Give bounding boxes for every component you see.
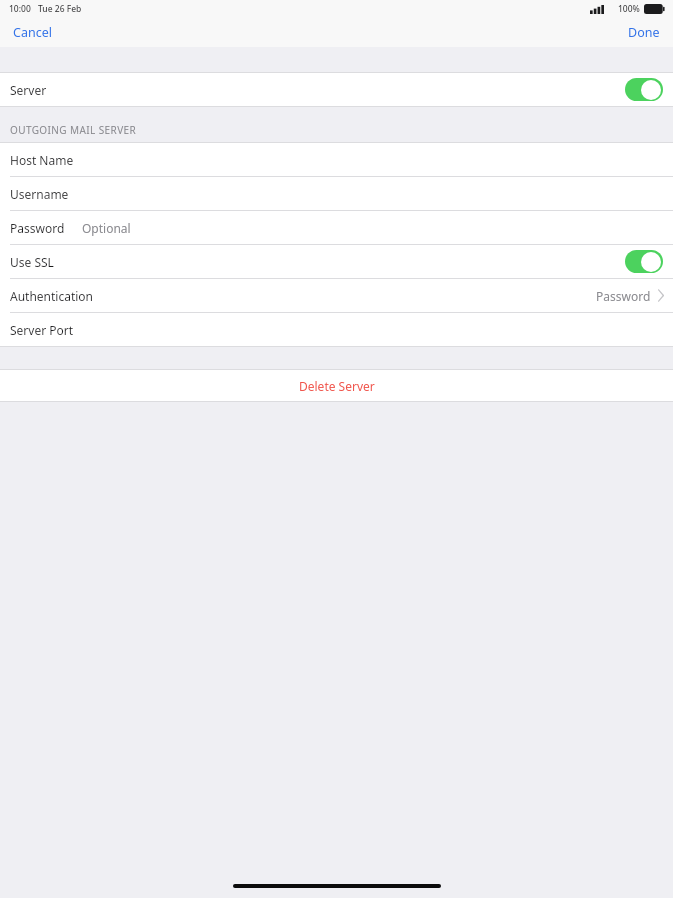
- staticText: Optional: [82, 220, 131, 236]
- staticText: 10:00: [9, 3, 31, 15]
- button[interactable]: Toggle: [625, 78, 663, 101]
- button[interactable]: Use SSL: [0, 245, 673, 278]
- staticText: OUTGOING MAIL SERVER: [10, 123, 137, 137]
- button[interactable]: Cancel: [0, 19, 65, 46]
- button[interactable]: Toggle: [625, 250, 663, 273]
- staticText: Server: [10, 82, 47, 98]
- staticText: Done: [628, 24, 660, 41]
- button[interactable]: Username: [0, 177, 673, 210]
- staticText: Tue 26 Feb: [38, 3, 82, 15]
- staticText: Authentication: [10, 288, 94, 304]
- staticText: Use SSL: [10, 254, 54, 270]
- button[interactable]: Password: [0, 211, 673, 244]
- button[interactable]: Server Port: [0, 313, 673, 346]
- staticText: Delete Server: [299, 378, 375, 394]
- button[interactable]: Delete Server: [0, 370, 673, 401]
- button[interactable]: Host Name: [0, 143, 673, 176]
- staticText: Cancel: [13, 24, 52, 41]
- staticText: 100%: [618, 3, 640, 15]
- button[interactable]: Authentication: [0, 279, 673, 312]
- button[interactable]: Server: [0, 73, 673, 106]
- staticText: Server Port: [10, 322, 74, 338]
- button[interactable]: Done: [615, 19, 673, 46]
- staticText: Username: [10, 186, 69, 202]
- staticText: Password: [10, 220, 65, 236]
- staticText: Password: [596, 288, 651, 304]
- staticText: Host Name: [10, 152, 74, 168]
